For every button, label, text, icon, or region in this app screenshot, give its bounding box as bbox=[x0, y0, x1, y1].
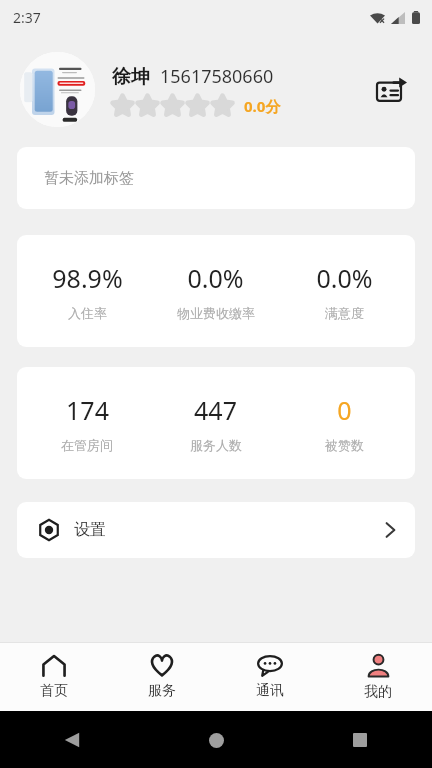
button[interactable]: 徐坤 bbox=[20, 52, 414, 127]
staticText: 服务人数 bbox=[190, 437, 242, 453]
staticText: 入住率 bbox=[68, 305, 107, 321]
staticText: 447 bbox=[194, 393, 237, 427]
button[interactable]: 我的 bbox=[324, 643, 432, 711]
staticText: 174 bbox=[66, 393, 109, 427]
button[interactable]: 分享名片 bbox=[370, 68, 414, 112]
button[interactable]: 最近任务 bbox=[340, 720, 380, 760]
staticText: 0.0% bbox=[316, 261, 373, 295]
staticText: 首页 bbox=[40, 682, 68, 700]
staticText: 2:37 bbox=[13, 8, 41, 27]
button[interactable]: 首页 bbox=[0, 643, 108, 711]
staticText: 0.0分 bbox=[244, 96, 281, 116]
button[interactable]: 主页 bbox=[196, 720, 236, 760]
staticText: 服务 bbox=[148, 682, 176, 700]
staticText: 我的 bbox=[364, 683, 392, 701]
button[interactable]: 暂未添加标签 bbox=[17, 147, 415, 209]
staticText: 0 bbox=[337, 393, 352, 427]
staticText: 0.0% bbox=[187, 261, 244, 295]
staticText: 徐坤 bbox=[112, 65, 150, 89]
button[interactable] bbox=[20, 52, 95, 127]
button[interactable]: 服务 bbox=[108, 643, 216, 711]
staticText: 被赞数 bbox=[325, 437, 364, 453]
staticText: 在管房间 bbox=[61, 437, 113, 453]
button[interactable]: 设置 bbox=[17, 502, 415, 558]
button[interactable]: 通讯 bbox=[216, 643, 324, 711]
staticText: 通讯 bbox=[256, 682, 284, 700]
button[interactable]: 98.9% bbox=[17, 235, 415, 347]
staticText: 98.9% bbox=[52, 261, 123, 295]
button[interactable]: 174 bbox=[17, 367, 415, 479]
staticText: 暂未添加标签 bbox=[44, 169, 134, 188]
button[interactable]: 返回 bbox=[52, 720, 92, 760]
staticText: 15617580660 bbox=[160, 64, 274, 89]
staticText: 满意度 bbox=[325, 305, 364, 321]
staticText: 物业费收缴率 bbox=[177, 305, 255, 321]
staticText: 设置 bbox=[74, 520, 106, 540]
